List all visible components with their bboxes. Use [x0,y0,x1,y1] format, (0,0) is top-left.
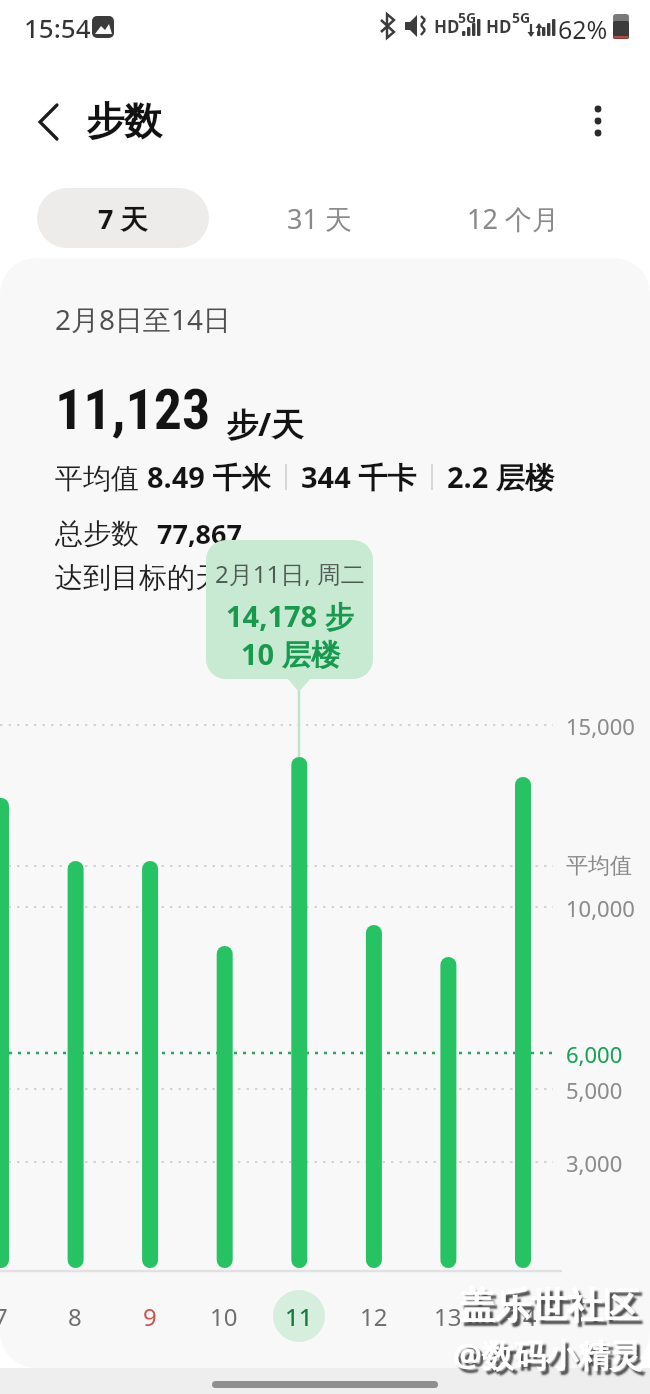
staticText: 31 天 [287,200,352,237]
staticText: 总步数 [55,516,139,551]
staticText: 盖乐世社区 [459,1283,639,1328]
staticText: @数码小精灵 [453,1333,642,1377]
staticText: 11,123 [55,377,211,443]
staticText: 11 [285,1300,313,1333]
button[interactable]: 11 [273,1290,325,1342]
staticText: 7 天 [98,200,148,237]
staticText: 14,178 步 [226,596,354,636]
button[interactable]: 12 个月 [440,188,585,248]
staticText: 7 [0,1300,8,1333]
staticText: 10 [210,1300,238,1333]
staticText: 77,867 [157,515,242,552]
staticText: 平均值 [566,852,632,880]
staticText: 达到目标的天数 [55,560,251,595]
staticText: 12 个月 [467,200,559,237]
staticText: 10 层楼 [241,634,340,674]
button[interactable] [574,98,622,146]
staticText: 15:54 [24,10,91,45]
staticText: 13 [434,1300,462,1333]
staticText: 14 [509,1300,537,1333]
staticText: 步/天 [226,402,304,446]
staticText: 2月8日至14日 [55,300,232,338]
staticText: 8.49 千米 [147,457,271,497]
staticText: 8 [68,1300,82,1333]
staticText: HD [434,15,460,38]
staticText: 9 [143,1300,157,1333]
staticText: 平均值 [55,458,147,496]
staticText: 5G [458,8,477,27]
button[interactable]: 7 天 [37,188,209,248]
button[interactable] [26,98,74,146]
staticText: 344 千卡 [301,457,417,497]
staticText: 步数 [86,97,162,145]
staticText: 2月11日, 周二 [215,557,365,590]
staticText: 5,000 [566,1075,623,1105]
button[interactable]: 31 天 [254,188,384,248]
staticText: 5G [512,8,531,27]
staticText: 12 [360,1300,388,1333]
staticText: 10,000 [566,893,635,923]
staticText: 6,000 [566,1039,623,1069]
staticText: 62% [558,12,608,46]
staticText: 3,000 [566,1148,623,1178]
staticText: 2.2 层楼 [447,457,554,497]
staticText: 15,000 [566,711,635,741]
staticText: HD [486,15,512,38]
